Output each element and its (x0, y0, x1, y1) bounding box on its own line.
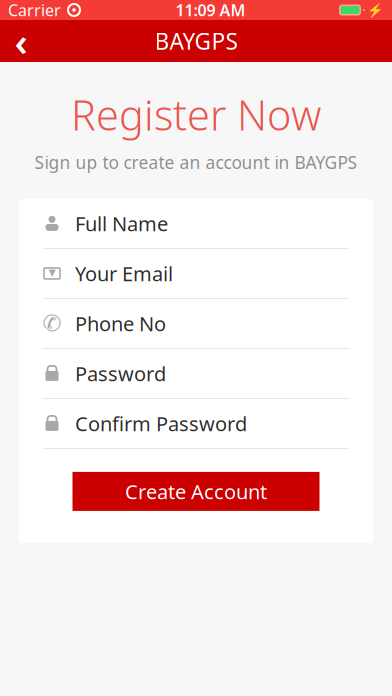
staticText: Password (75, 360, 166, 387)
staticText: Carrier (8, 0, 61, 21)
staticText: Create Account (125, 478, 267, 505)
button[interactable]: ✆ (43, 299, 349, 348)
button[interactable]: Back (0, 20, 42, 62)
staticText: Register Now (71, 87, 321, 142)
staticText: ✆ (42, 310, 61, 336)
staticText: BAYGPS (154, 26, 237, 56)
button[interactable]: Full Name (43, 199, 349, 248)
button[interactable]: ▾ (43, 249, 349, 298)
staticText: Phone No (75, 310, 166, 337)
staticText: Your Email (75, 260, 173, 287)
staticText: 11:09 AM (175, 0, 245, 21)
staticText: Full Name (75, 210, 168, 237)
button[interactable]: Password (43, 349, 349, 398)
staticText: ‹ (14, 15, 27, 67)
button[interactable]: Create Account (72, 472, 319, 511)
staticText: Confirm Password (75, 410, 247, 437)
staticText: ▾ (48, 264, 55, 280)
button[interactable]: Confirm Password (43, 399, 349, 448)
staticText: ⚡ (367, 2, 384, 18)
staticText: Sign up to create an account in BAYGPS (34, 151, 357, 174)
